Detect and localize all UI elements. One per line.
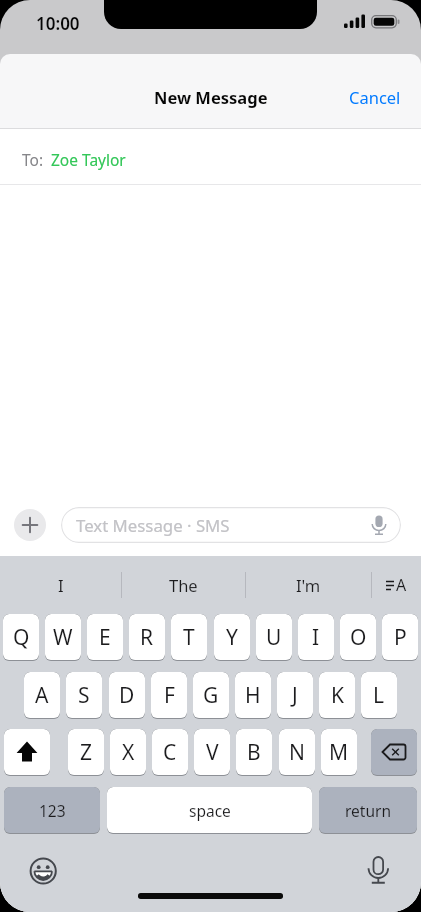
button[interactable]: T (171, 614, 207, 661)
staticText: W (53, 623, 73, 652)
button[interactable]: U (256, 614, 292, 661)
staticText: 10:00 (36, 12, 80, 35)
button[interactable]: W (45, 614, 81, 661)
staticText: K (331, 681, 344, 710)
staticText: I'm (296, 574, 321, 596)
button[interactable]: A (372, 556, 421, 614)
button[interactable]: C (152, 729, 188, 776)
button[interactable] (366, 855, 391, 885)
staticText: V (206, 738, 219, 767)
staticText: New Message (154, 86, 268, 108)
button[interactable]: R (129, 614, 165, 661)
staticText: H (245, 681, 261, 710)
button[interactable]: F (151, 672, 187, 719)
staticText: U (266, 623, 282, 652)
button[interactable]: V (194, 729, 230, 776)
staticText: J (292, 681, 298, 710)
button[interactable]: B (236, 729, 272, 776)
button[interactable]: K (319, 672, 355, 719)
staticText: I (312, 623, 320, 652)
staticText: C (163, 738, 177, 767)
staticText: B (247, 738, 261, 767)
button[interactable]: N (279, 729, 315, 776)
button[interactable] (4, 729, 50, 776)
button[interactable] (28, 856, 58, 886)
button[interactable]: 123 (4, 787, 100, 834)
button[interactable]: The (122, 556, 245, 614)
button[interactable]: To: (22, 129, 421, 184)
button[interactable]: return (319, 787, 417, 834)
staticText: N (289, 738, 305, 767)
staticText: D (119, 681, 135, 710)
staticText: O (350, 623, 367, 652)
staticText: I (58, 574, 64, 596)
staticText: Q (13, 623, 30, 652)
staticText: return (345, 800, 391, 821)
staticText: Cancel (349, 86, 401, 108)
staticText: To: (22, 149, 44, 170)
button[interactable]: S (66, 672, 102, 719)
staticText: A (396, 574, 407, 596)
staticText: L (373, 681, 385, 710)
staticText: R (140, 623, 154, 652)
staticText: Z (80, 738, 93, 767)
button[interactable]: X (110, 729, 146, 776)
staticText: G (203, 681, 219, 710)
button[interactable]: E (87, 614, 123, 661)
staticText: Y (226, 623, 238, 652)
staticText: F (164, 681, 175, 710)
button[interactable]: A (24, 672, 60, 719)
button[interactable]: O (340, 614, 376, 661)
button[interactable]: M (321, 729, 357, 776)
button[interactable]: D (109, 672, 145, 719)
staticText: E (99, 623, 111, 652)
button[interactable]: I (0, 556, 121, 614)
button[interactable]: I'm (246, 556, 371, 614)
button[interactable]: P (382, 614, 418, 661)
staticText: The (169, 574, 198, 596)
button[interactable] (14, 509, 46, 541)
button[interactable] (371, 729, 417, 776)
staticText: A (35, 681, 49, 710)
staticText: T (183, 623, 195, 652)
button[interactable]: space (107, 787, 312, 834)
staticText: Zoe Taylor (51, 149, 126, 170)
button[interactable]: L (361, 672, 397, 719)
staticText: X (122, 738, 135, 767)
button[interactable]: I (298, 614, 334, 661)
staticText: P (394, 623, 407, 652)
button[interactable]: J (277, 672, 313, 719)
staticText: space (189, 800, 231, 821)
button[interactable]: Y (214, 614, 250, 661)
button[interactable]: Z (68, 729, 104, 776)
button[interactable]: Text Message · SMS (61, 507, 401, 543)
staticText: 123 (39, 800, 66, 821)
button[interactable]: G (193, 672, 229, 719)
staticText: Text Message · SMS (76, 514, 230, 537)
button[interactable]: Q (3, 614, 39, 661)
button[interactable]: Cancel (349, 86, 401, 108)
staticText: M (329, 738, 349, 767)
staticText: S (78, 681, 90, 710)
button[interactable]: H (235, 672, 271, 719)
